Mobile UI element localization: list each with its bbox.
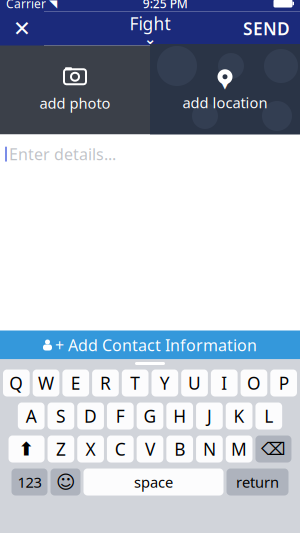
button[interactable]: Close <box>0 10 44 46</box>
button[interactable]: Enter details... <box>0 134 300 330</box>
button[interactable]: P <box>270 369 297 396</box>
button[interactable]: W <box>33 369 59 396</box>
staticText: O <box>247 371 261 394</box>
button[interactable]: return <box>226 468 288 495</box>
button[interactable]: F <box>107 402 134 429</box>
button[interactable]: Y <box>151 369 178 396</box>
button[interactable]: 123 <box>11 468 47 495</box>
button[interactable]: T <box>122 369 148 396</box>
button[interactable]: L <box>255 402 282 429</box>
button[interactable]: K <box>226 402 252 429</box>
staticText: T <box>130 371 140 394</box>
staticText: X <box>86 437 96 460</box>
button[interactable]: U <box>181 369 208 396</box>
button[interactable]: Z <box>48 435 74 462</box>
staticText: ☺ <box>56 471 75 493</box>
staticText: E <box>71 371 81 394</box>
staticText: ⬆ <box>19 438 35 460</box>
button[interactable]: Q <box>3 369 30 396</box>
staticText: A <box>26 404 37 427</box>
button[interactable]: + Add Contact Information <box>0 330 300 359</box>
button[interactable]: M <box>226 435 252 462</box>
staticText: ▾ <box>220 74 229 94</box>
button[interactable]: J <box>196 402 223 429</box>
button[interactable]: E <box>62 369 89 396</box>
staticText: 123 <box>17 472 41 492</box>
staticText: add location <box>182 93 267 112</box>
staticText: B <box>174 437 185 460</box>
staticText: Fight <box>129 12 170 35</box>
staticText: 9:25 PM <box>143 0 188 11</box>
button[interactable]: Delete <box>255 435 291 462</box>
button[interactable]: D <box>77 402 104 429</box>
button[interactable]: H <box>166 402 193 429</box>
staticText: L <box>264 404 273 427</box>
staticText: S <box>56 404 66 427</box>
button[interactable]: C <box>107 435 134 462</box>
button[interactable]: X <box>77 435 104 462</box>
button[interactable]: add photo <box>0 45 150 134</box>
staticText: ✕ <box>13 16 31 41</box>
button[interactable]: space <box>83 468 223 495</box>
button[interactable]: A <box>18 402 45 429</box>
staticText: J <box>207 404 212 427</box>
staticText: V <box>145 437 155 460</box>
staticText: Y <box>160 371 170 394</box>
button[interactable]: I <box>211 369 238 396</box>
staticText: D <box>84 404 97 427</box>
staticText: H <box>173 404 186 427</box>
staticText: Enter details... <box>9 143 116 165</box>
button[interactable]: Shift <box>9 435 45 462</box>
staticText: Carrier <box>6 0 46 11</box>
button[interactable]: ▾ <box>150 45 300 134</box>
staticText: add photo <box>39 93 110 113</box>
staticText: W <box>38 371 54 394</box>
staticText: M <box>231 437 247 460</box>
button[interactable]: S <box>48 402 74 429</box>
staticText: P <box>279 371 289 394</box>
button[interactable]: O <box>241 369 267 396</box>
staticText: C <box>115 437 126 460</box>
staticText: return <box>236 472 279 492</box>
staticText: U <box>188 371 201 394</box>
staticText: ⌫ <box>261 439 286 459</box>
staticText: ⌄ <box>144 31 156 47</box>
staticText: Q <box>9 371 23 394</box>
button[interactable]: R <box>92 369 119 396</box>
staticText: F <box>116 404 125 427</box>
button[interactable]: B <box>166 435 193 462</box>
staticText: Z <box>56 437 66 460</box>
staticText: R <box>100 371 111 394</box>
staticText: + Add Contact Information <box>55 334 257 356</box>
staticText: space <box>134 472 173 492</box>
button[interactable]: Emoji <box>50 468 80 495</box>
staticText: SEND <box>243 17 290 40</box>
button[interactable]: V <box>137 435 163 462</box>
staticText: ◥ <box>49 0 57 9</box>
staticText: K <box>234 404 245 427</box>
button[interactable]: SEND <box>233 10 300 46</box>
button[interactable]: G <box>137 402 163 429</box>
staticText: G <box>143 404 156 427</box>
staticText: I <box>221 371 227 394</box>
staticText: N <box>203 437 216 460</box>
button[interactable]: N <box>196 435 223 462</box>
